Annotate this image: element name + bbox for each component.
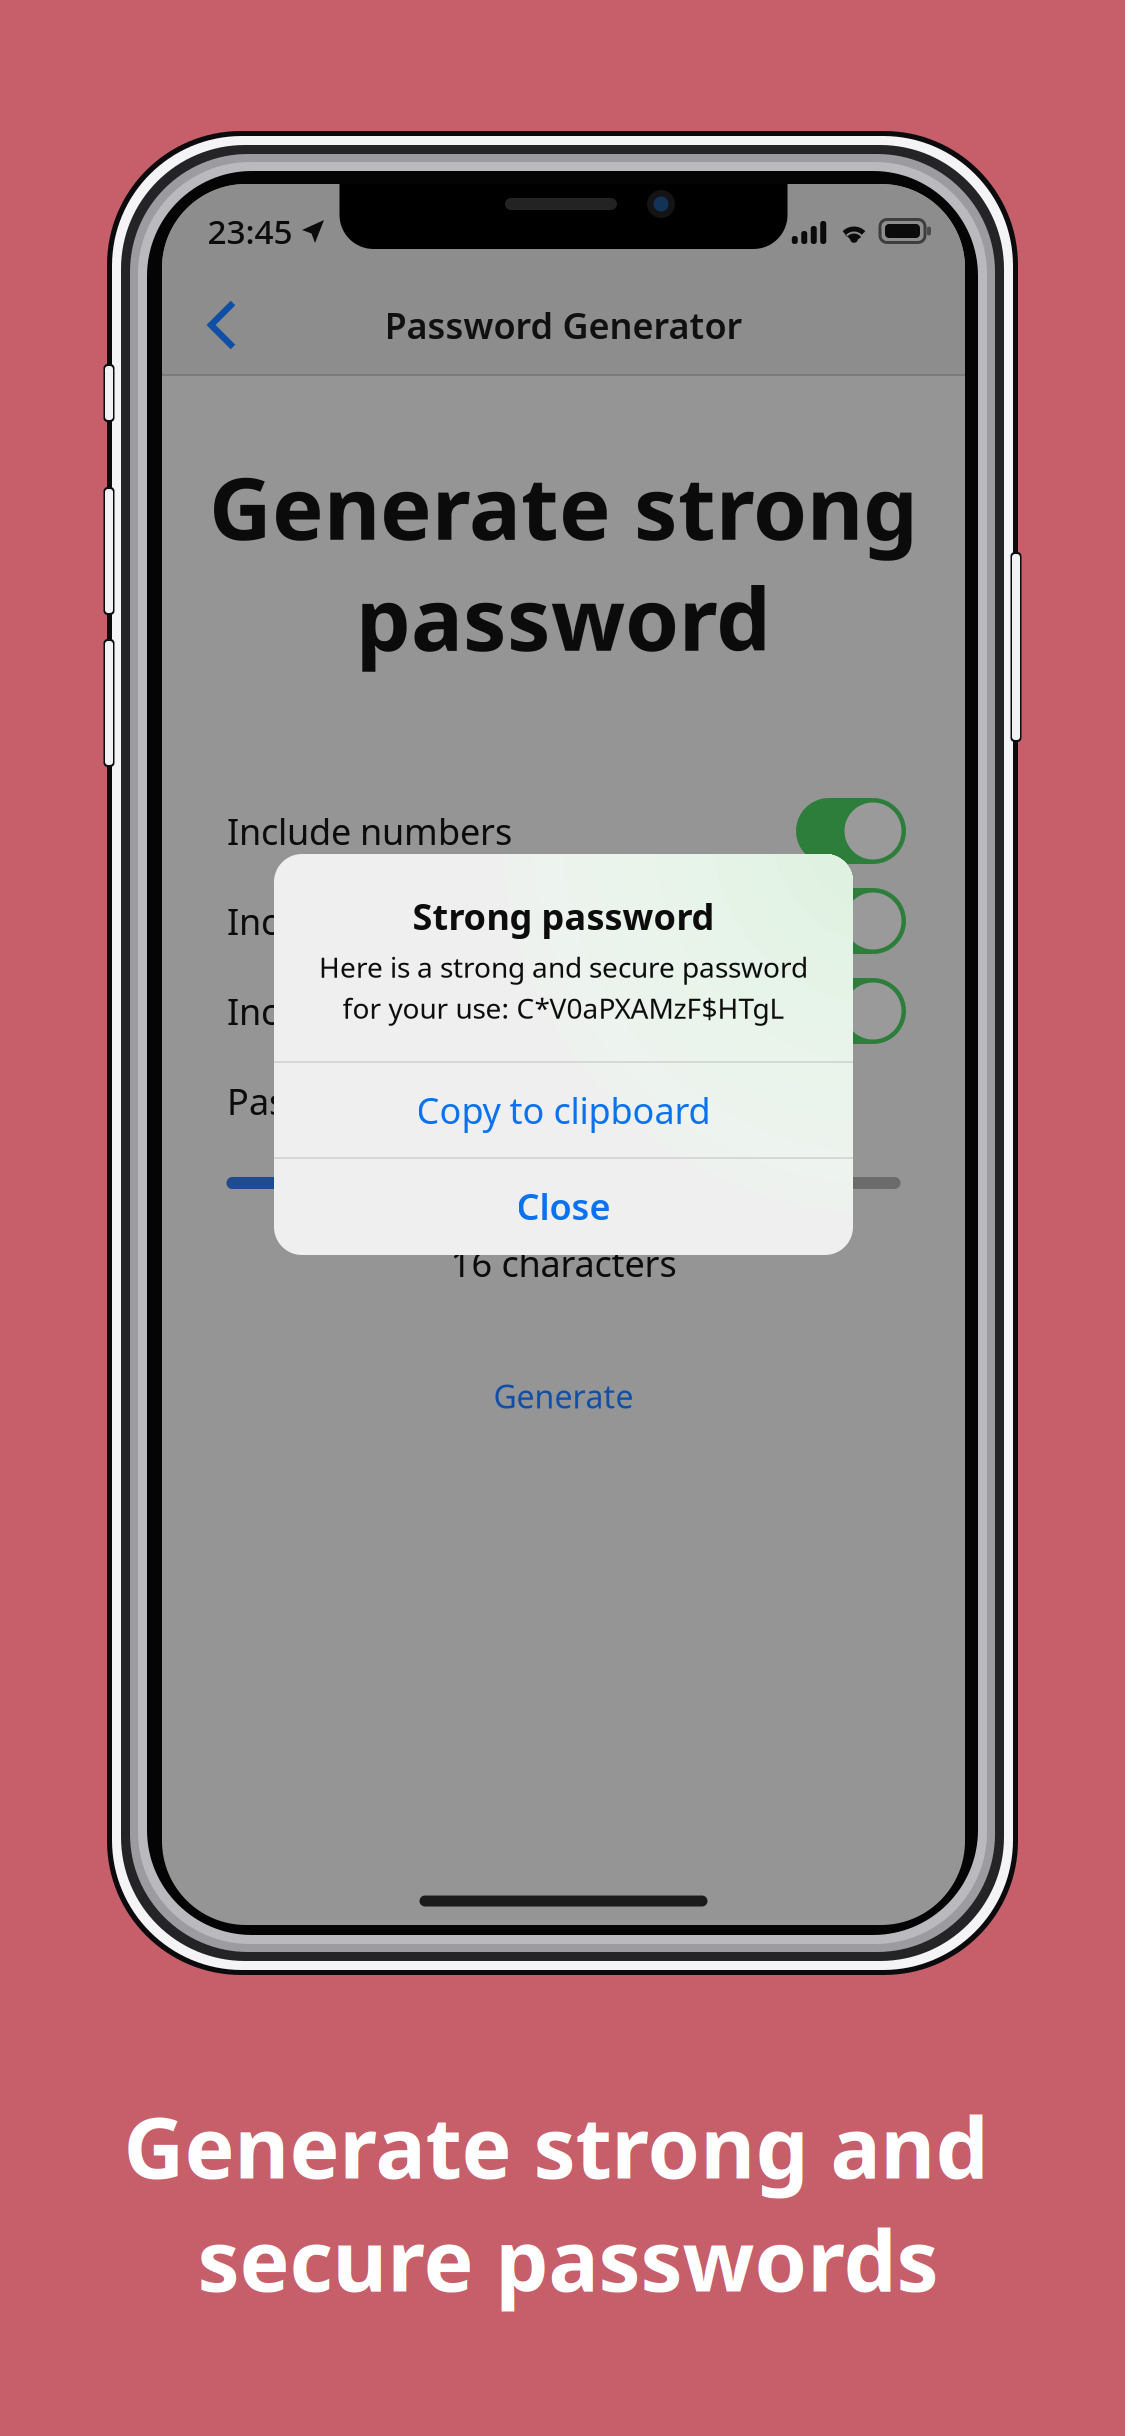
staticText: Generate strong and (123, 2090, 988, 2202)
staticText: Include letters (227, 897, 467, 945)
button[interactable]: Back (180, 279, 264, 371)
staticText: Generate (493, 1375, 633, 1417)
staticText: Include symbols (227, 987, 499, 1035)
staticText: Generate strong (209, 448, 918, 564)
staticText: Here is a strong and secure password (319, 948, 808, 986)
staticText: for your use: C*V0aPXAMzF$HTgL (342, 989, 784, 1027)
button[interactable]: Password length (226, 1155, 900, 1211)
button[interactable]: Copy to clipboard (274, 1063, 853, 1157)
staticText: 16 characters (450, 1239, 676, 1287)
staticText: Close (516, 1182, 610, 1230)
staticText: Strong password (412, 892, 714, 940)
staticText: Password length (227, 1077, 506, 1125)
button[interactable]: Close (274, 1158, 853, 1253)
staticText: password (356, 559, 771, 675)
button[interactable]: Include letters (162, 876, 965, 966)
staticText: secure passwords (197, 2203, 938, 2315)
staticText: Copy to clipboard (416, 1086, 710, 1134)
staticText: Include numbers (227, 807, 512, 855)
staticText: 23:45 (207, 209, 292, 253)
button[interactable]: Include numbers (162, 786, 965, 876)
button[interactable]: Include symbols (162, 966, 965, 1056)
button[interactable]: Generate (453, 1365, 673, 1427)
staticText: Password Generator (384, 301, 742, 349)
